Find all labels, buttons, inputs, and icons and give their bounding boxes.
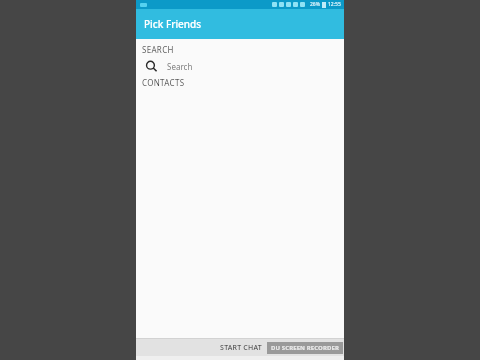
staticText: Search [167,61,193,72]
staticText: 26% [310,1,320,8]
staticText: CONTACTS [142,77,185,88]
other: Search [145,60,158,73]
staticText: START CHAT [220,343,262,353]
button[interactable]: START CHAT [215,339,267,356]
staticText: DU SCREEN RECORDER [271,344,339,352]
staticText: Pick Friends [144,17,202,31]
staticText: SEARCH [142,44,174,55]
button[interactable]: Search [136,56,344,76]
staticText: 12:55 [328,1,341,8]
